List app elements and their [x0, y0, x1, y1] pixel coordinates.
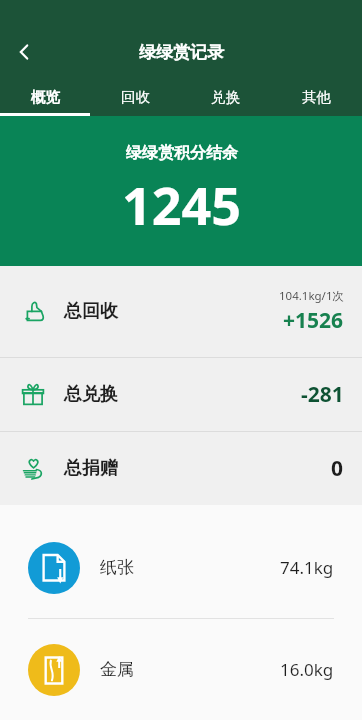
button[interactable]: 纸张: [0, 517, 362, 618]
staticText: 兑换: [211, 88, 240, 106]
button[interactable]: 其他: [271, 78, 362, 116]
staticText: 纸张: [100, 557, 134, 578]
button[interactable]: 金属: [0, 619, 362, 720]
staticText: -281: [301, 380, 344, 409]
staticText: 104.1kg/1次: [279, 288, 344, 304]
staticText: 总兑换: [64, 383, 118, 406]
staticText: 金属: [100, 659, 134, 680]
button[interactable]: 总捐赠: [0, 432, 362, 505]
button[interactable]: 总兑换: [0, 358, 362, 431]
button[interactable]: 兑换: [180, 78, 271, 116]
staticText: 0: [331, 454, 344, 483]
staticText: 其他: [302, 88, 331, 106]
staticText: 总回收: [64, 300, 118, 323]
staticText: 绿绿赏积分结余: [126, 143, 238, 163]
button[interactable]: 总回收: [0, 266, 362, 357]
button[interactable]: 概览: [0, 78, 90, 116]
staticText: 概览: [31, 88, 60, 106]
staticText: 1245: [122, 169, 241, 240]
staticText: 总捐赠: [64, 457, 118, 480]
button[interactable]: 返回: [0, 28, 48, 76]
button[interactable]: 回收: [90, 78, 180, 116]
staticText: +1526: [283, 306, 344, 335]
staticText: 回收: [121, 88, 150, 106]
staticText: 16.0kg: [280, 658, 334, 681]
staticText: 74.1kg: [280, 556, 334, 579]
staticText: 绿绿赏记录: [139, 42, 224, 63]
